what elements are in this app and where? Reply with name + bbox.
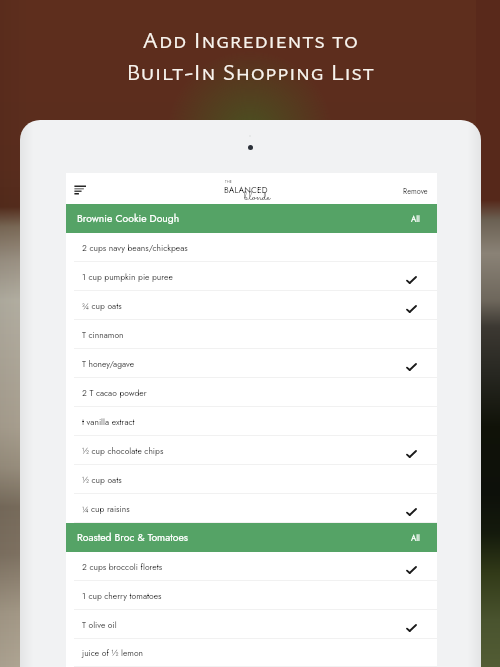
- staticText: T cinnamon: [82, 329, 124, 341]
- staticText: THE: [225, 179, 232, 184]
- button[interactable]: T cinnamon: [66, 320, 437, 349]
- button[interactable]: 2 T cacao powder: [66, 378, 437, 407]
- staticText: Add Ingredients to: [142, 23, 359, 55]
- staticText: 2 T cacao powder: [82, 387, 147, 399]
- staticText: Remove: [403, 186, 428, 197]
- staticText: blonde: [244, 188, 271, 207]
- button[interactable]: ¾ cup oats: [66, 291, 437, 320]
- button[interactable]: 2 cups broccoli florets: [66, 552, 437, 581]
- staticText: All: [411, 213, 420, 225]
- button[interactable]: Roasted Broc & Tomatoes: [66, 523, 437, 552]
- staticText: ¼ cup raisins: [82, 503, 130, 515]
- button[interactable]: Remove: [403, 186, 428, 197]
- staticText: T honey/agave: [82, 358, 135, 370]
- button[interactable]: ¼ cup raisins: [66, 494, 437, 523]
- staticText: t vanilla extract: [82, 416, 135, 428]
- staticText: Built-In Shopping List: [126, 55, 375, 87]
- button[interactable]: ½ cup oats: [66, 465, 437, 494]
- button[interactable]: T olive oil: [66, 610, 437, 639]
- staticText: BALANCED: [224, 184, 268, 196]
- staticText: 1 cup cherry tomatoes: [82, 590, 162, 602]
- button[interactable]: Brownie Cookie Dough: [66, 204, 437, 233]
- button[interactable]: 2 cups navy beans/chickpeas: [66, 233, 437, 262]
- staticText: juice of ½ lemon: [82, 647, 143, 659]
- staticText: T olive oil: [82, 619, 117, 631]
- staticText: All: [411, 532, 420, 544]
- staticText: ½ cup oats: [82, 474, 122, 486]
- staticText: 1 cup pumpkin pie puree: [82, 271, 173, 283]
- staticText: 2 cups broccoli florets: [82, 561, 163, 573]
- button[interactable]: T honey/agave: [66, 349, 437, 378]
- staticText: 2 cups navy beans/chickpeas: [82, 242, 188, 254]
- button[interactable]: juice of ½ lemon: [66, 639, 437, 667]
- staticText: Roasted Broc & Tomatoes: [77, 530, 188, 545]
- button[interactable]: t vanilla extract: [66, 407, 437, 436]
- button[interactable]: ½ cup chocolate chips: [66, 436, 437, 465]
- button[interactable]: Sort list: [74, 185, 88, 196]
- staticText: ½ cup chocolate chips: [82, 445, 164, 457]
- staticText: ¾ cup oats: [82, 300, 122, 312]
- button[interactable]: 1 cup cherry tomatoes: [66, 581, 437, 610]
- staticText: Brownie Cookie Dough: [77, 211, 180, 226]
- button[interactable]: 1 cup pumpkin pie puree: [66, 262, 437, 291]
